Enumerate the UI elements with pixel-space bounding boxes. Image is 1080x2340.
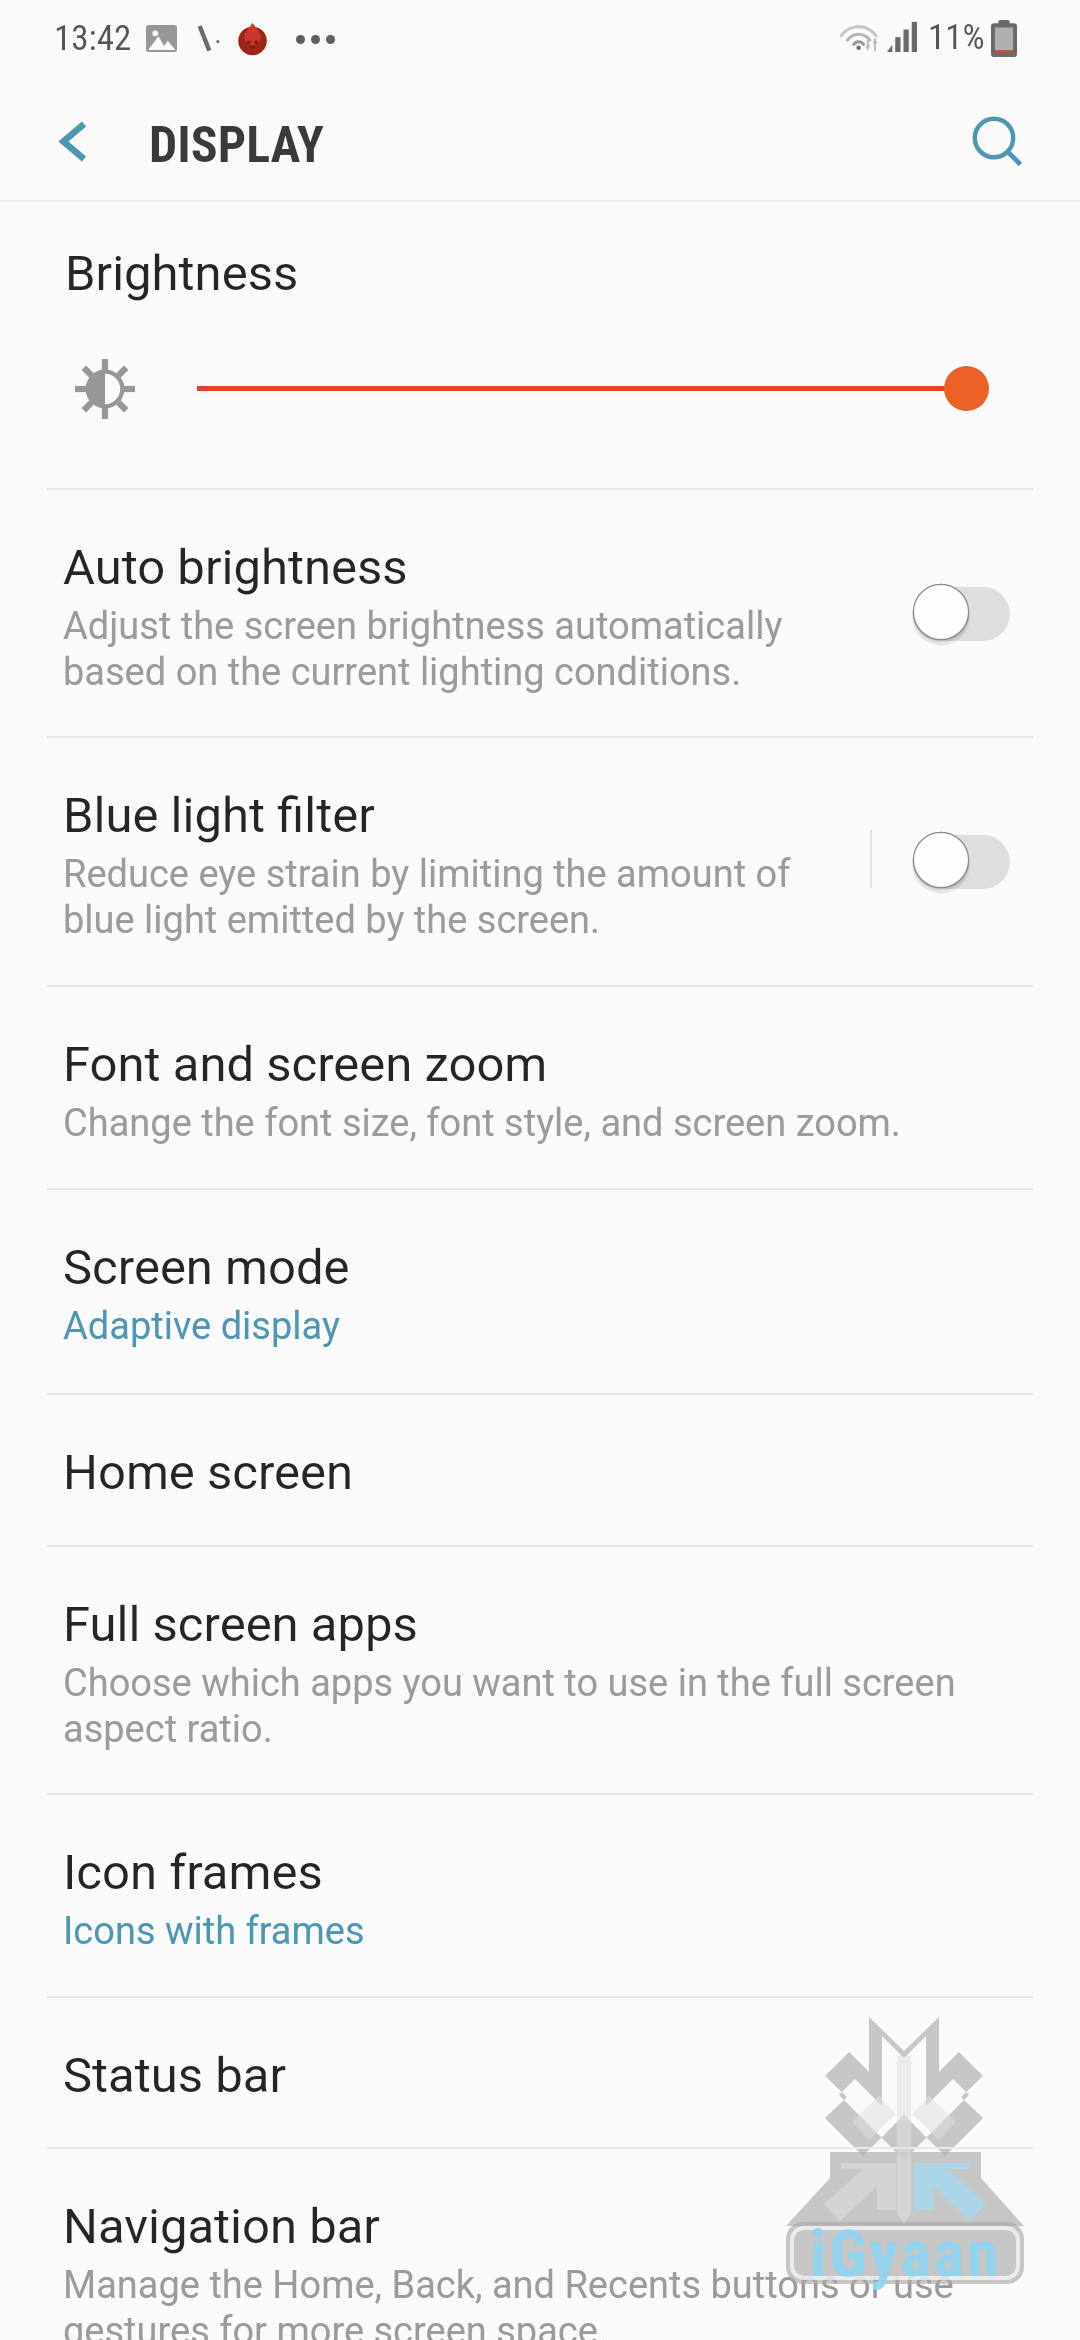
- staticText: 13:42: [54, 18, 132, 59]
- staticText: 11%: [928, 17, 985, 58]
- staticText: Blue light filter: [63, 787, 375, 844]
- button[interactable]: Search: [944, 80, 1048, 184]
- button[interactable]: Screen mode: [0, 1188, 1080, 1391]
- staticText: DISPLAY: [149, 116, 324, 175]
- button[interactable]: Toggle Blue light filter: [880, 814, 1040, 904]
- button[interactable]: Brightness slider: [180, 340, 1020, 436]
- staticText: Icons with frames: [63, 1909, 365, 1954]
- staticText: Reduce eye strain by limiting the amount…: [63, 852, 791, 943]
- button[interactable]: Status bar: [0, 1996, 1080, 2147]
- staticText: Screen mode: [63, 1239, 350, 1296]
- button[interactable]: Back: [20, 80, 124, 184]
- staticText: Brightness: [65, 245, 299, 302]
- button[interactable]: Navigation bar: [0, 2147, 1080, 2340]
- staticText: Font and screen zoom: [63, 1036, 548, 1093]
- staticText: Choose which apps you want to use in the…: [63, 1661, 956, 1752]
- staticText: Manage the Home, Back, and Recents butto…: [63, 2263, 954, 2340]
- button[interactable]: Auto brightness: [0, 488, 1080, 691]
- staticText: Adaptive display: [63, 1304, 340, 1349]
- button[interactable]: Icon frames: [0, 1793, 1080, 1996]
- staticText: Navigation bar: [63, 2198, 380, 2255]
- button[interactable]: Font and screen zoom: [0, 985, 1080, 1188]
- staticText: Home screen: [63, 1444, 354, 1501]
- staticText: Status bar: [63, 2047, 287, 2104]
- button[interactable]: Blue light filter: [0, 736, 1080, 939]
- staticText: Adjust the screen brightness automatical…: [63, 604, 783, 695]
- staticText: Icon frames: [63, 1844, 323, 1901]
- staticText: iGyaan: [810, 2217, 1002, 2292]
- button[interactable]: Full screen apps: [0, 1545, 1080, 1748]
- staticText: Change the font size, font style, and sc…: [63, 1101, 901, 1146]
- staticText: Auto brightness: [63, 539, 408, 596]
- button[interactable]: Toggle Auto brightness: [880, 566, 1040, 656]
- staticText: Full screen apps: [63, 1596, 418, 1653]
- button[interactable]: Home screen: [0, 1393, 1080, 1544]
